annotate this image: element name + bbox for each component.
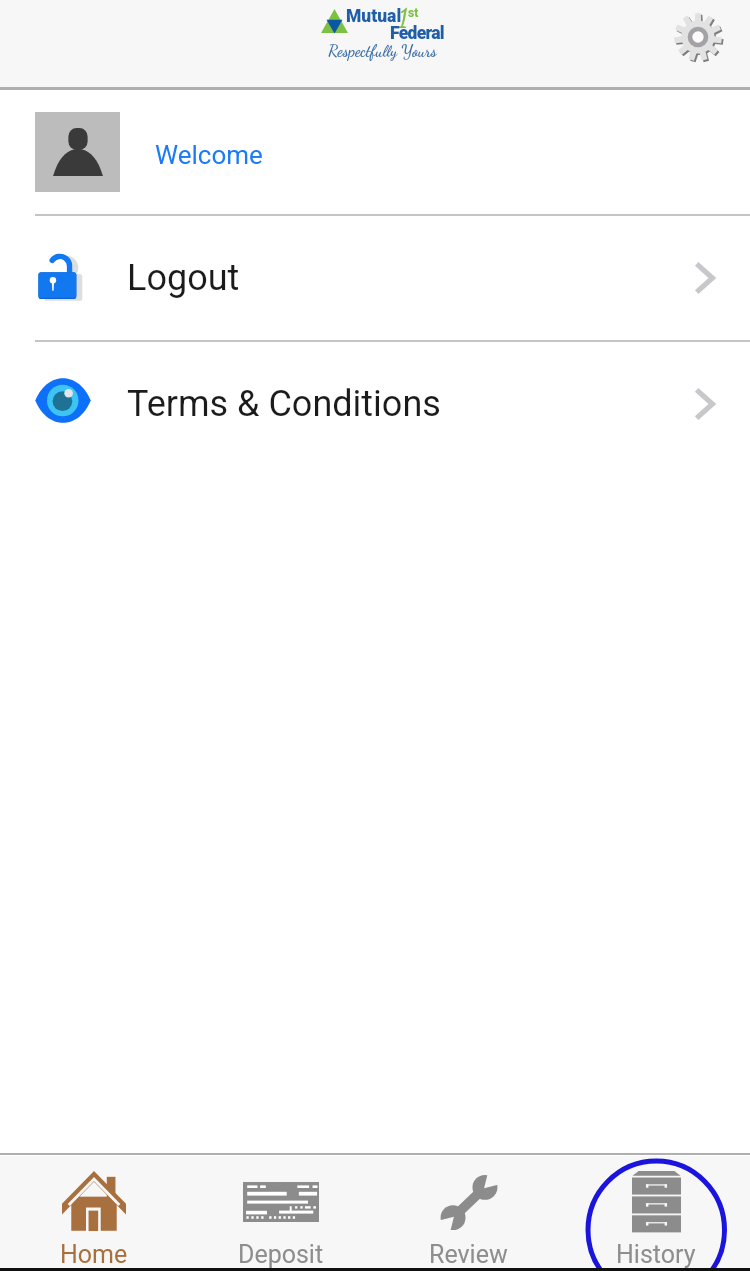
staticText: Mutual bbox=[346, 6, 402, 27]
staticText: Federal bbox=[390, 23, 444, 44]
staticText: Logout bbox=[127, 257, 240, 299]
button[interactable]: Review bbox=[374, 1156, 562, 1268]
staticText: st bbox=[408, 6, 419, 20]
button[interactable]: Logout bbox=[0, 216, 750, 340]
button[interactable]: Deposit bbox=[187, 1156, 374, 1268]
staticText: History bbox=[616, 1240, 696, 1269]
button[interactable]: Terms & Conditions bbox=[0, 342, 750, 466]
staticText: Terms & Conditions bbox=[127, 383, 441, 425]
staticText: Respectfully Yours bbox=[328, 41, 437, 60]
staticText: Welcome bbox=[155, 140, 263, 170]
button[interactable]: History bbox=[562, 1156, 750, 1268]
staticText: Home bbox=[60, 1240, 128, 1269]
staticText: Review bbox=[429, 1240, 508, 1269]
button[interactable]: Welcome bbox=[0, 90, 750, 214]
button[interactable]: Settings bbox=[673, 12, 723, 62]
button[interactable]: Home bbox=[0, 1156, 187, 1268]
staticText: Deposit bbox=[238, 1240, 324, 1269]
staticText: 1 bbox=[398, 3, 408, 33]
